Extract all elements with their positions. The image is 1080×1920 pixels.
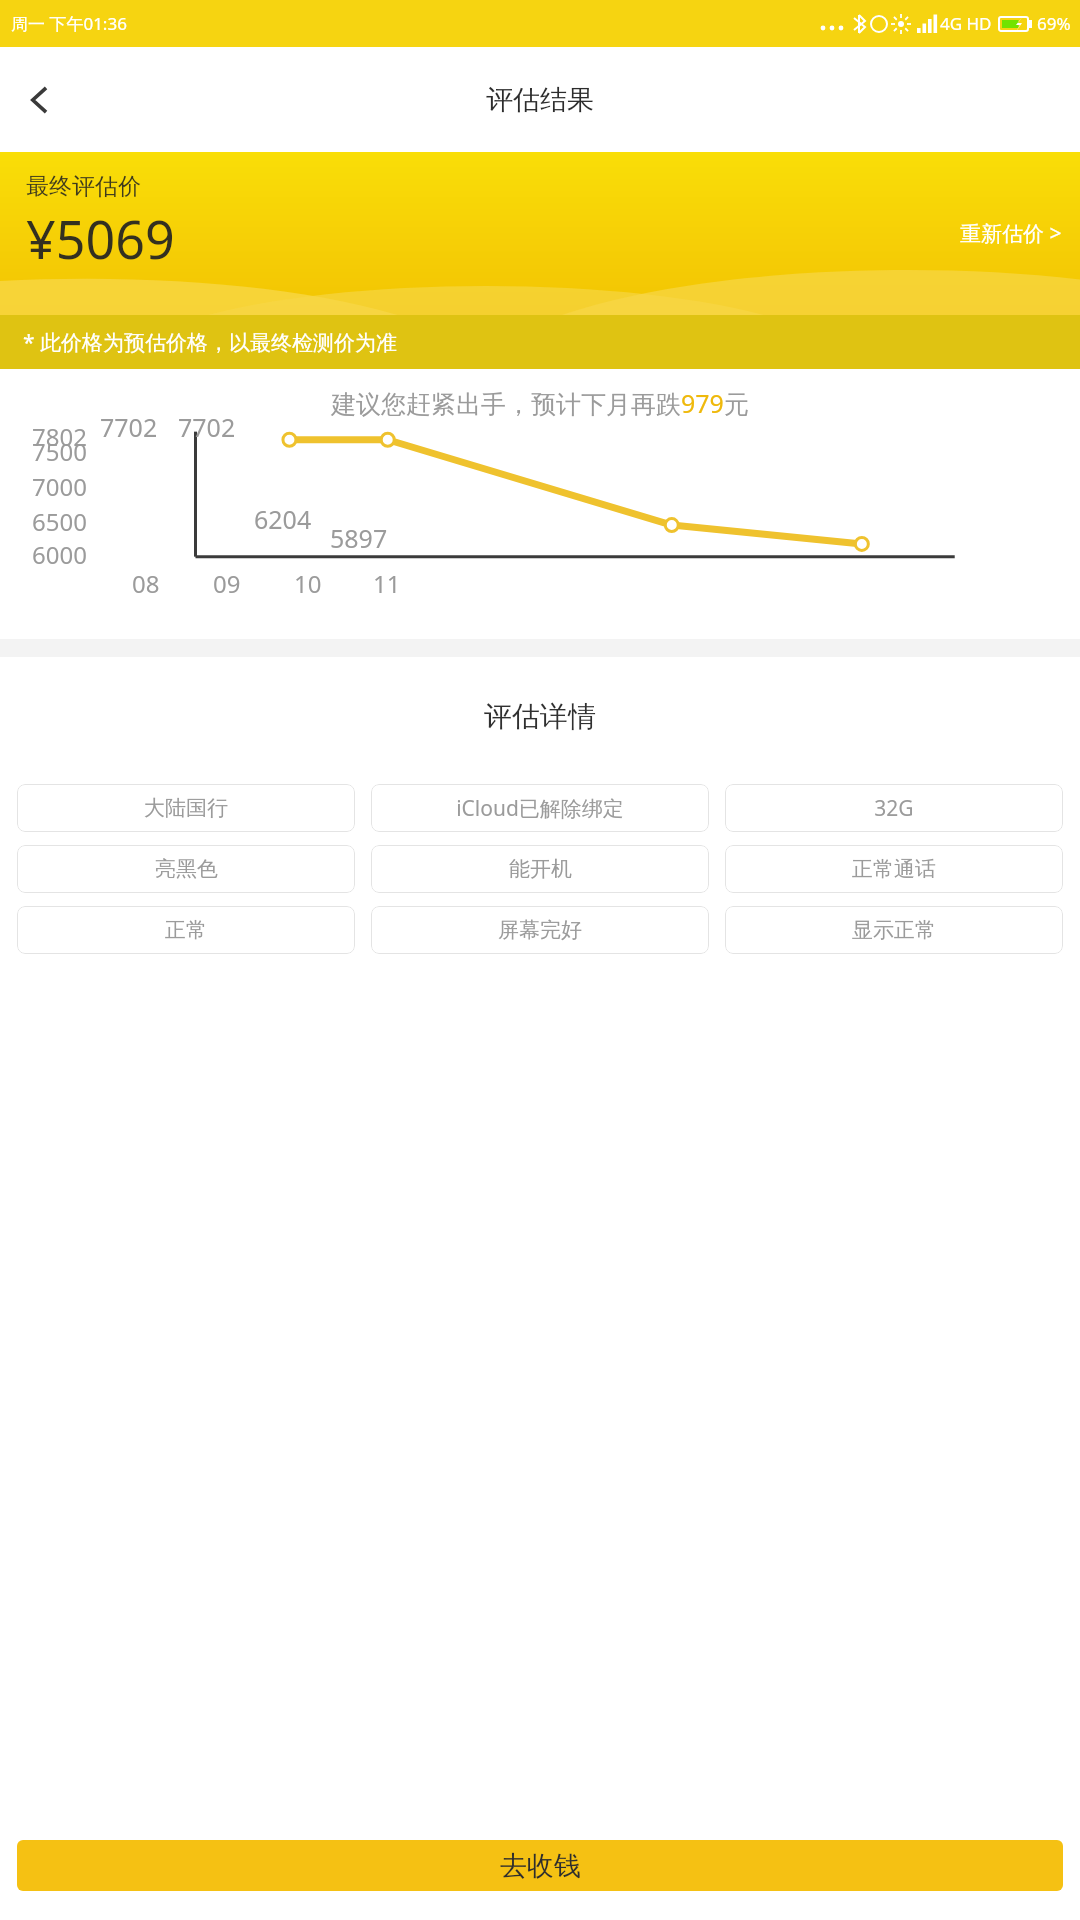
staticText: 6000 [0,538,87,571]
staticText: 7702 [178,410,236,444]
button[interactable]: 大陆国行 [17,784,355,832]
staticText: iCloud已解除绑定 [456,794,624,823]
staticText: 评估详情 [0,699,1080,734]
button[interactable]: 显示正常 [725,906,1063,954]
staticText: * 此价格为预估价格，以最终检测价为准 [23,328,398,357]
staticText: 7500 [0,435,87,468]
staticText: 10 [294,567,322,600]
staticText: 评估结果 [486,83,594,117]
button[interactable]: iCloud已解除绑定 [371,784,709,832]
staticText: 7702 [100,410,158,444]
button[interactable]: 32G [725,784,1063,832]
button[interactable]: 正常 [17,906,355,954]
staticText: 6500 [0,505,87,538]
staticText: 6204 [254,502,312,536]
staticText: 最终评估价 [26,172,141,201]
staticText: 正常通话 [852,856,936,882]
button[interactable]: 正常通话 [725,845,1063,893]
staticText: 大陆国行 [144,795,228,821]
staticText: 能开机 [509,856,572,882]
button[interactable]: 亮黑色 [17,845,355,893]
staticText: 5897 [330,521,388,555]
staticText: 正常 [165,917,207,943]
staticText: 08 [132,567,160,600]
staticText: 09 [213,567,241,600]
staticText: 7000 [0,470,87,503]
button[interactable]: 屏幕完好 [371,906,709,954]
button[interactable]: 能开机 [371,845,709,893]
button[interactable]: Back [0,55,78,145]
staticText: 去收钱 [500,1849,581,1883]
staticText: 11 [373,567,401,600]
staticText: 显示正常 [852,917,936,943]
staticText: ¥5069 [26,203,175,274]
staticText: 亮黑色 [155,856,218,882]
staticText: 69% [1037,12,1071,35]
staticText: 周一 下午01:36 [11,12,127,35]
button[interactable]: 重新估价 > [954,209,1068,258]
staticText: 建议您赶紧出手，预计下月再跌979元 [331,386,749,420]
staticText: 4G HD [940,12,992,35]
staticText: 屏幕完好 [498,917,582,943]
staticText: 32G [874,794,914,823]
button[interactable]: 去收钱 [17,1840,1063,1891]
staticText: 重新估价 > [960,219,1062,248]
staticText: 7802 [0,420,87,453]
